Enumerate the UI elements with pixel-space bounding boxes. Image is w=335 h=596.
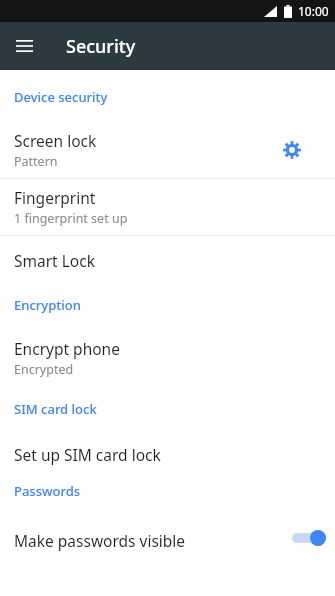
staticText: Encryption xyxy=(14,296,81,314)
button[interactable]: Open navigation menu xyxy=(10,32,38,60)
staticText: 1 fingerprint set up xyxy=(14,210,128,227)
staticText: Pattern xyxy=(14,153,58,170)
staticText: Smart Lock xyxy=(14,250,95,271)
staticText: 10:00 xyxy=(298,3,329,19)
staticText: Fingerprint xyxy=(14,187,96,208)
staticText: Encrypted xyxy=(14,361,74,378)
staticText: Set up SIM card lock xyxy=(14,444,161,465)
staticText: Make passwords visible xyxy=(14,530,186,551)
button[interactable]: Set up SIM card lock xyxy=(0,434,335,474)
button[interactable]: Fingerprint xyxy=(0,179,335,235)
button[interactable]: Screen lock xyxy=(0,122,335,178)
staticText: Passwords xyxy=(14,482,81,500)
button[interactable]: Smart Lock xyxy=(0,236,335,284)
staticText: Screen lock xyxy=(14,130,97,151)
staticText: Encrypt phone xyxy=(14,338,120,359)
button[interactable]: Make passwords visible xyxy=(0,516,335,564)
button[interactable]: Encrypt phone xyxy=(0,330,335,386)
staticText: Device security xyxy=(14,88,108,106)
staticText: SIM card lock xyxy=(14,400,97,418)
button[interactable]: Screen lock settings xyxy=(277,135,307,165)
staticText: Security xyxy=(66,34,136,59)
